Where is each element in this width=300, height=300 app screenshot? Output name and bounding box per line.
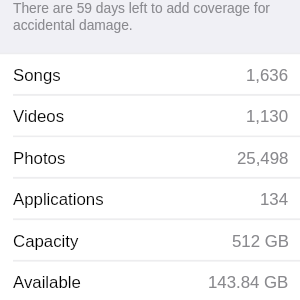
staticText: Photos <box>13 149 66 168</box>
staticText: Applications <box>13 190 104 209</box>
button[interactable]: Photos <box>0 138 300 179</box>
staticText: 1,636 <box>246 66 289 85</box>
button[interactable]: Applications <box>0 179 300 220</box>
staticText: Songs <box>13 66 61 85</box>
button[interactable]: Videos <box>0 96 300 137</box>
staticText: 143.84 GB <box>208 273 289 292</box>
button[interactable]: Available <box>0 262 300 300</box>
staticText: 134 <box>260 190 289 209</box>
staticText: Videos <box>13 107 65 126</box>
staticText: Available <box>13 273 81 292</box>
button[interactable]: Songs <box>0 55 300 96</box>
staticText: Capacity <box>13 232 79 251</box>
staticText: 1,130 <box>246 107 289 126</box>
staticText: 25,498 <box>237 149 289 168</box>
staticText: There are 59 days left to add coverage f… <box>13 1 278 33</box>
staticText: 512 GB <box>232 232 289 251</box>
button[interactable]: Capacity <box>0 221 300 262</box>
